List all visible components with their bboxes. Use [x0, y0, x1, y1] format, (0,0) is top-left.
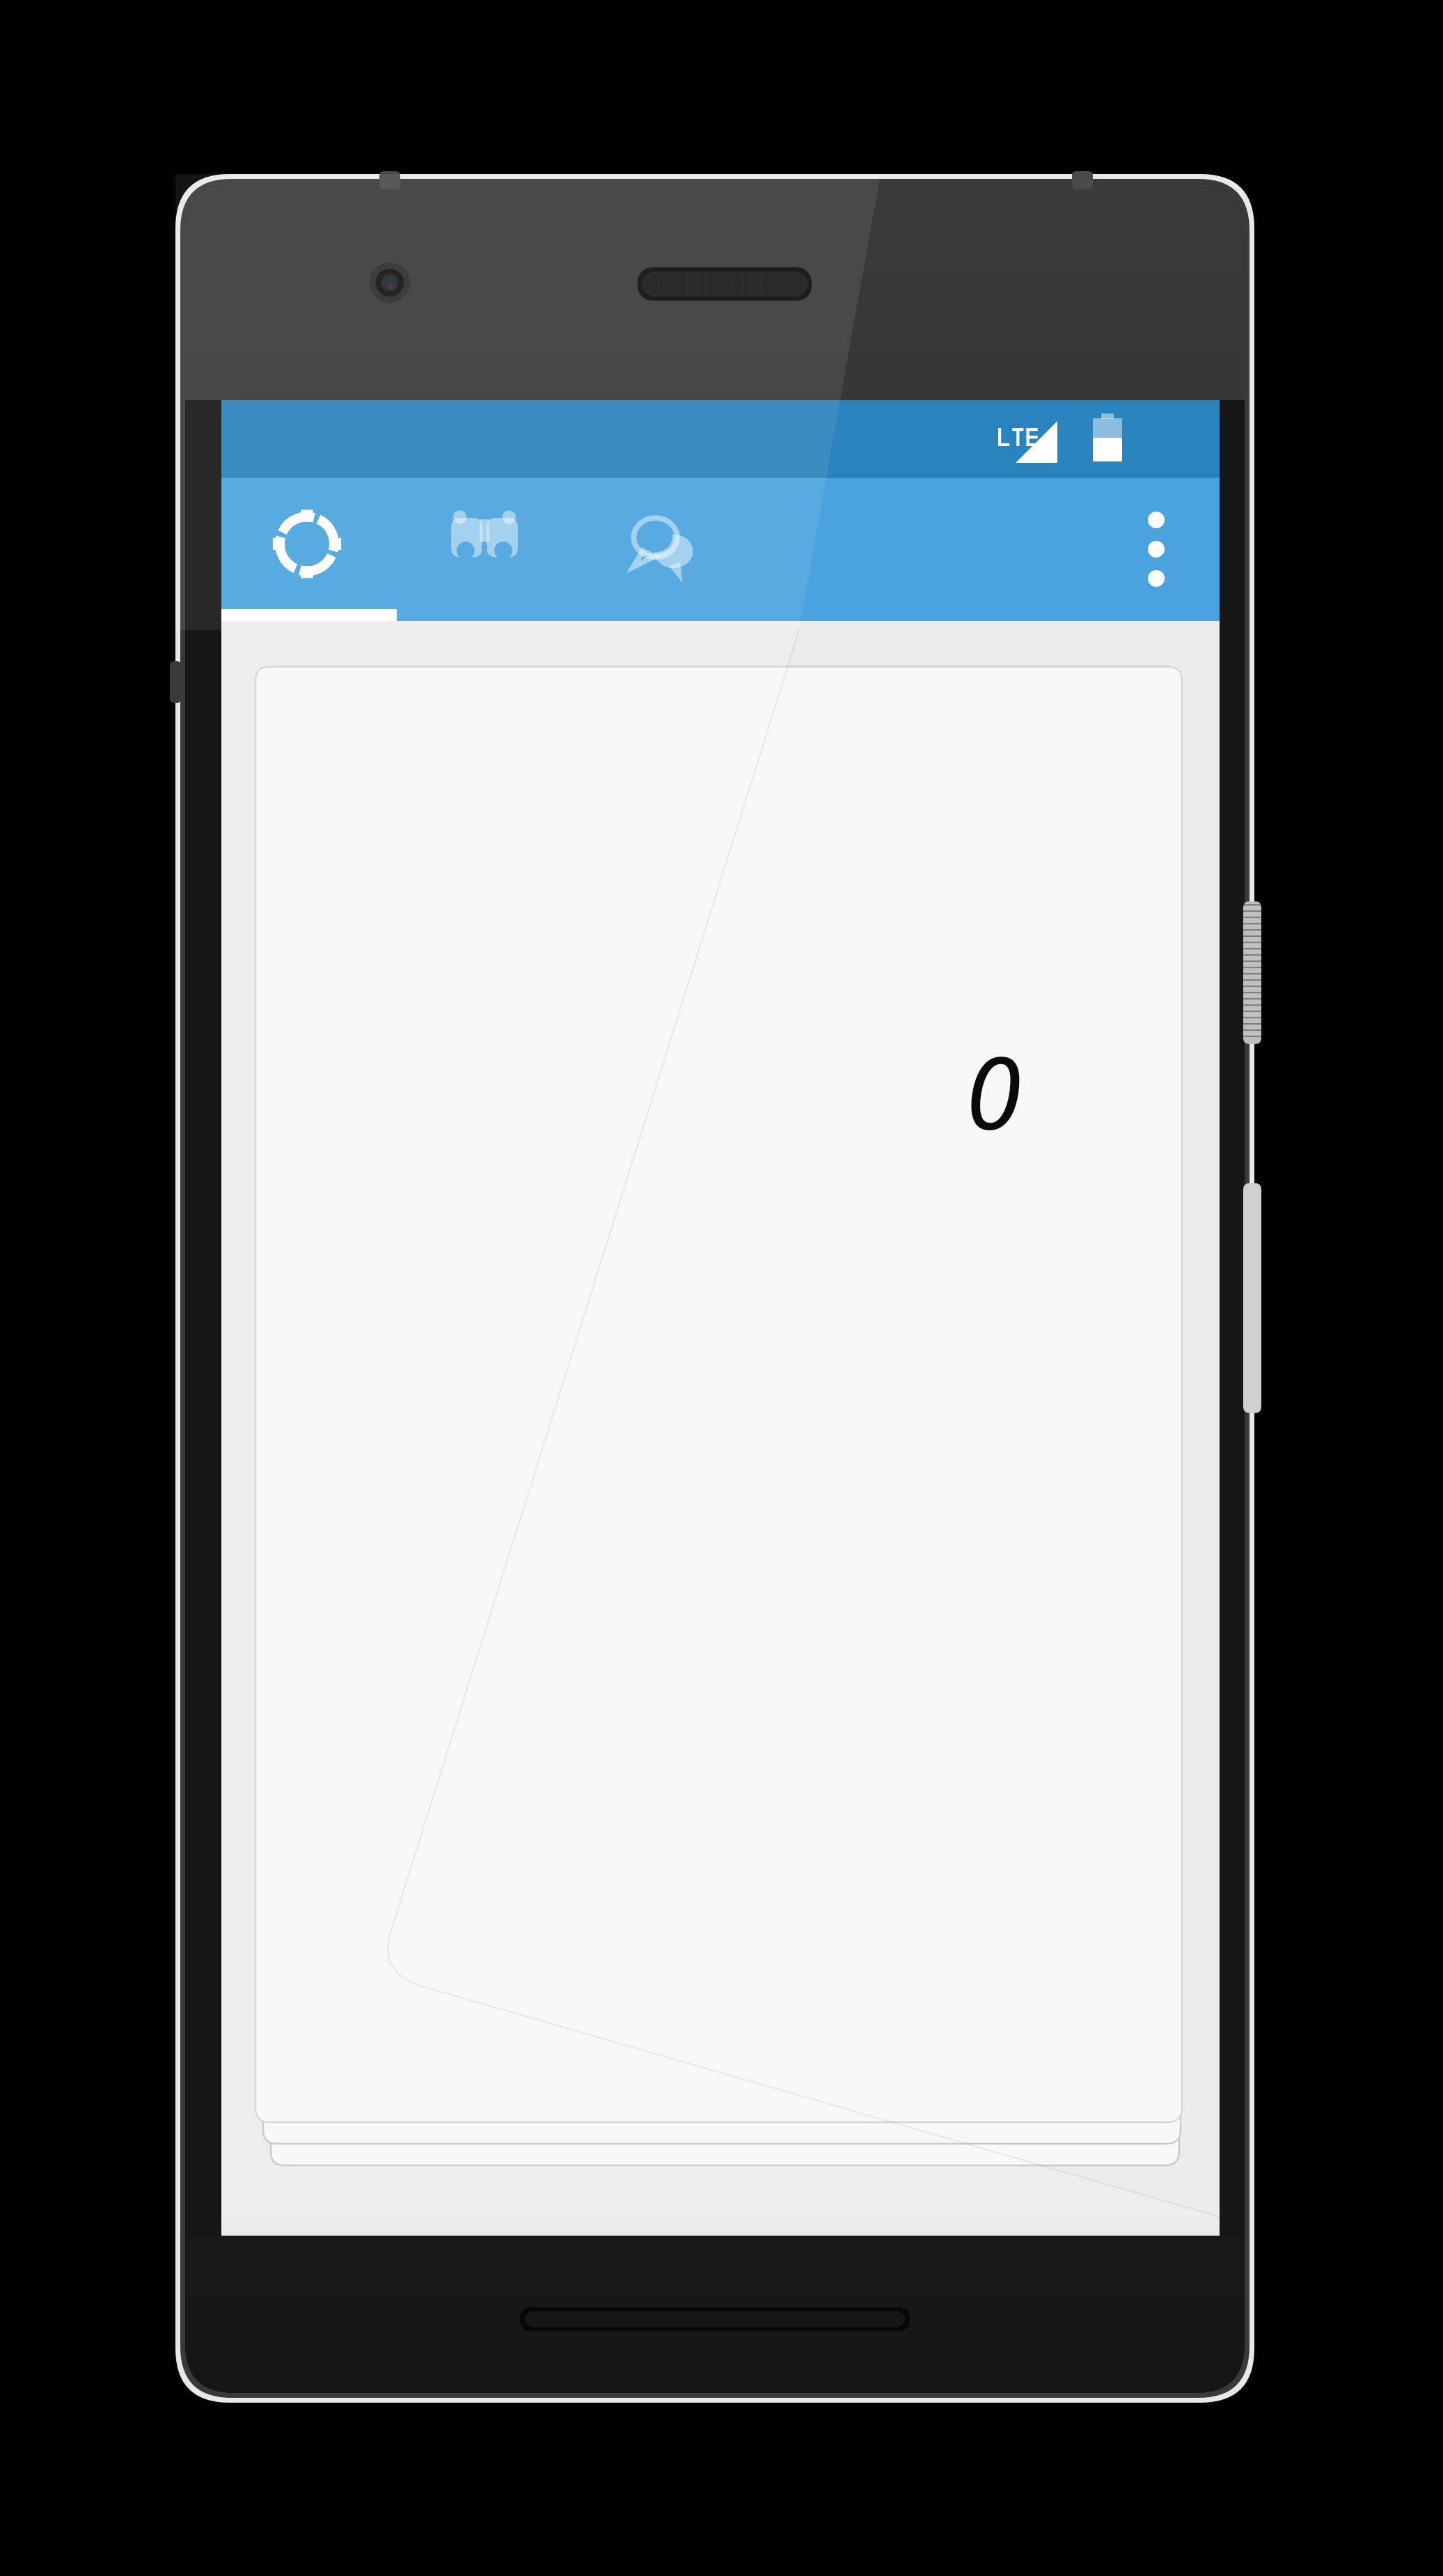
- staticText: 0: [952, 1022, 1035, 1161]
- button[interactable]: More options: [1105, 478, 1207, 621]
- button[interactable]: Nearby: [221, 478, 397, 621]
- button[interactable]: Messages: [575, 478, 753, 621]
- button[interactable]: Explore: [397, 478, 575, 621]
- button[interactable]: 0: [255, 667, 1182, 2122]
